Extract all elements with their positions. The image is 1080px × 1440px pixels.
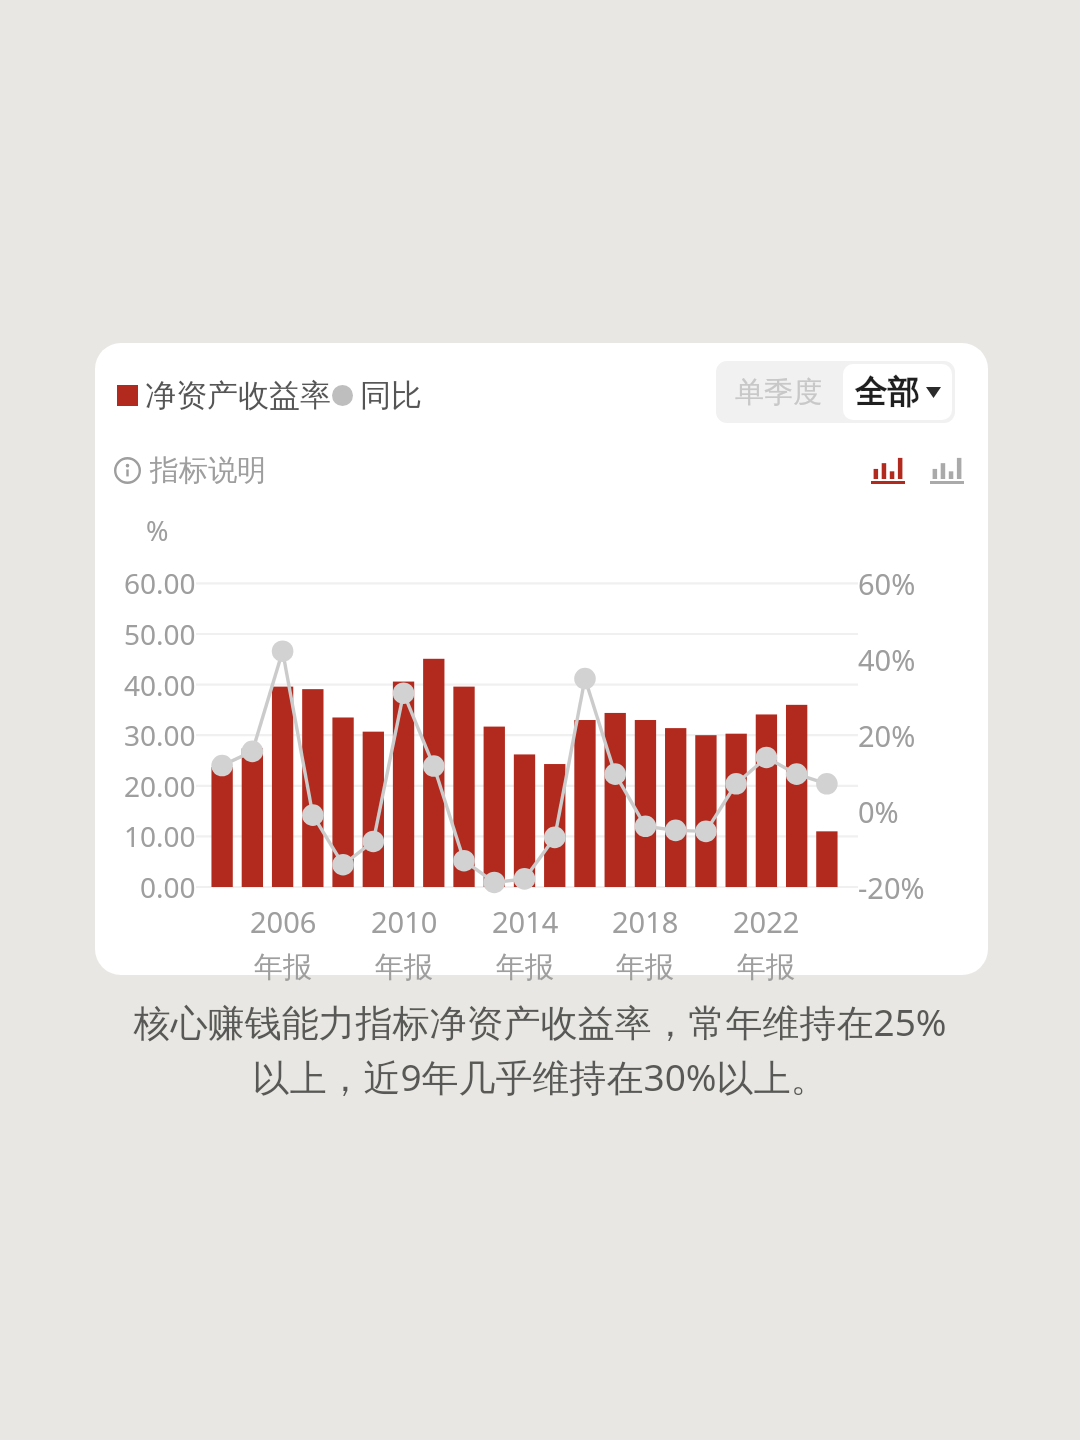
button[interactable]: 分组柱状图 (925, 448, 969, 492)
button[interactable]: 柱状图 (866, 448, 910, 492)
staticText: 年报 (737, 949, 795, 986)
staticText: 2006 (250, 902, 317, 941)
staticText: 2014 (492, 902, 559, 941)
staticText: 2018 (612, 902, 679, 941)
staticText: 2022 (733, 902, 800, 941)
staticText: 年报 (375, 949, 433, 986)
button[interactable]: 指标说明 (114, 452, 266, 489)
staticText: 2010 (371, 902, 438, 941)
staticText: 指标说明 (150, 452, 266, 489)
staticText: 年报 (496, 949, 554, 986)
staticText: 40% (858, 640, 916, 679)
staticText: -20% (858, 868, 925, 907)
staticText: 净资产收益率 (145, 376, 331, 415)
button[interactable]: 单季度 (716, 361, 841, 423)
staticText: 全部 (855, 372, 919, 412)
staticText: 年报 (254, 949, 312, 986)
staticText: 50.00 (124, 615, 196, 653)
staticText: 60.00 (124, 564, 196, 602)
staticText: 20% (858, 716, 916, 755)
staticText: % (146, 512, 169, 549)
button[interactable]: 同比 (332, 376, 422, 415)
staticText: 30.00 (124, 716, 196, 754)
staticText: 同比 (360, 376, 422, 415)
button[interactable]: 净资产收益率 (117, 376, 331, 415)
staticText: 核心赚钱能力指标净资产收益率，常年维持在25%以上，近9年几乎维持在30%以上。 (118, 996, 962, 1102)
staticText: 10.00 (124, 817, 196, 855)
staticText: 年报 (616, 949, 674, 986)
staticText: 20.00 (124, 767, 196, 805)
staticText: 0% (858, 792, 899, 831)
staticText: 60% (858, 564, 916, 603)
staticText: 单季度 (735, 374, 822, 411)
staticText: 0.00 (140, 868, 196, 906)
button[interactable]: 全部 (843, 364, 952, 420)
staticText: 40.00 (124, 666, 196, 704)
